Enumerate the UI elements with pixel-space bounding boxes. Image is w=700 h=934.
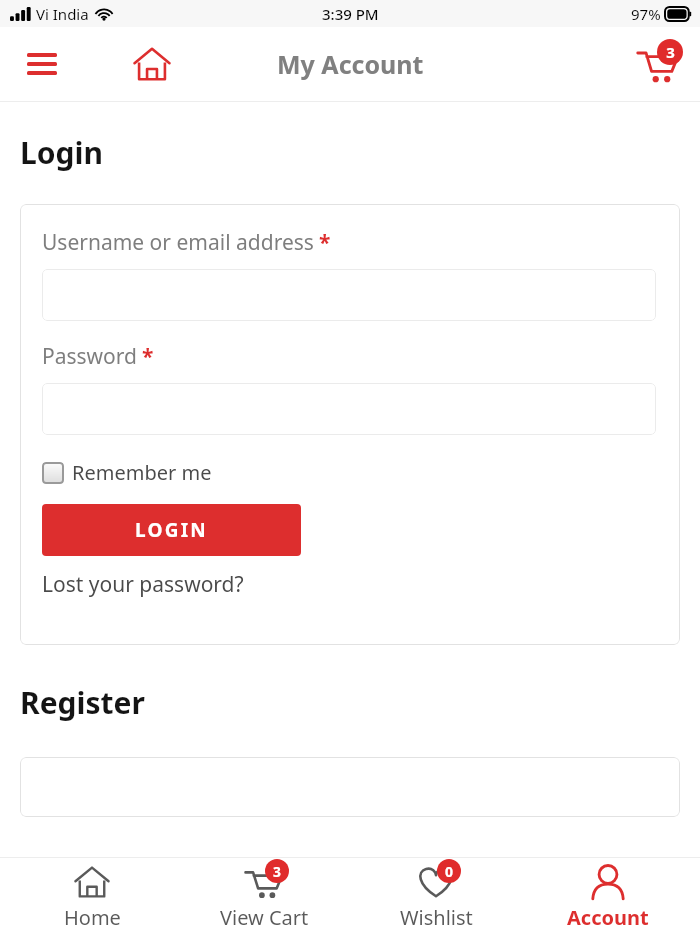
staticText: Account: [567, 904, 649, 930]
button[interactable]: Cart, 3 items: [630, 36, 686, 92]
staticText: My Account: [277, 47, 424, 81]
staticText: Home: [64, 904, 121, 930]
staticText: Wishlist: [400, 904, 473, 930]
staticText: 3: [666, 42, 675, 62]
staticText: Password: [42, 342, 137, 371]
staticText: View Cart: [220, 904, 309, 930]
staticText: 3:39 PM: [322, 4, 379, 24]
staticText: LOGIN: [135, 517, 208, 543]
staticText: 0: [445, 862, 454, 881]
button[interactable]: Account: [528, 858, 688, 934]
button[interactable]: LOGIN: [42, 504, 301, 556]
staticText: 97%: [631, 4, 661, 24]
button[interactable]: Home: [128, 40, 176, 88]
button[interactable]: 0: [356, 858, 516, 934]
staticText: Login: [20, 132, 103, 173]
staticText: Register: [20, 682, 145, 723]
button[interactable]: Remember me: [42, 459, 212, 486]
staticText: Username or email address: [42, 228, 314, 257]
button[interactable]: Home: [12, 858, 172, 934]
button[interactable]: 3: [184, 858, 344, 934]
staticText: Vi India: [36, 4, 89, 24]
staticText: *: [142, 342, 154, 371]
staticText: 3: [273, 862, 281, 881]
button[interactable]: Menu: [20, 42, 64, 86]
button[interactable]: Lost your password?: [42, 570, 244, 599]
button[interactable]: [42, 383, 656, 435]
button[interactable]: [42, 269, 656, 321]
staticText: Remember me: [72, 459, 212, 486]
staticText: *: [319, 228, 331, 257]
